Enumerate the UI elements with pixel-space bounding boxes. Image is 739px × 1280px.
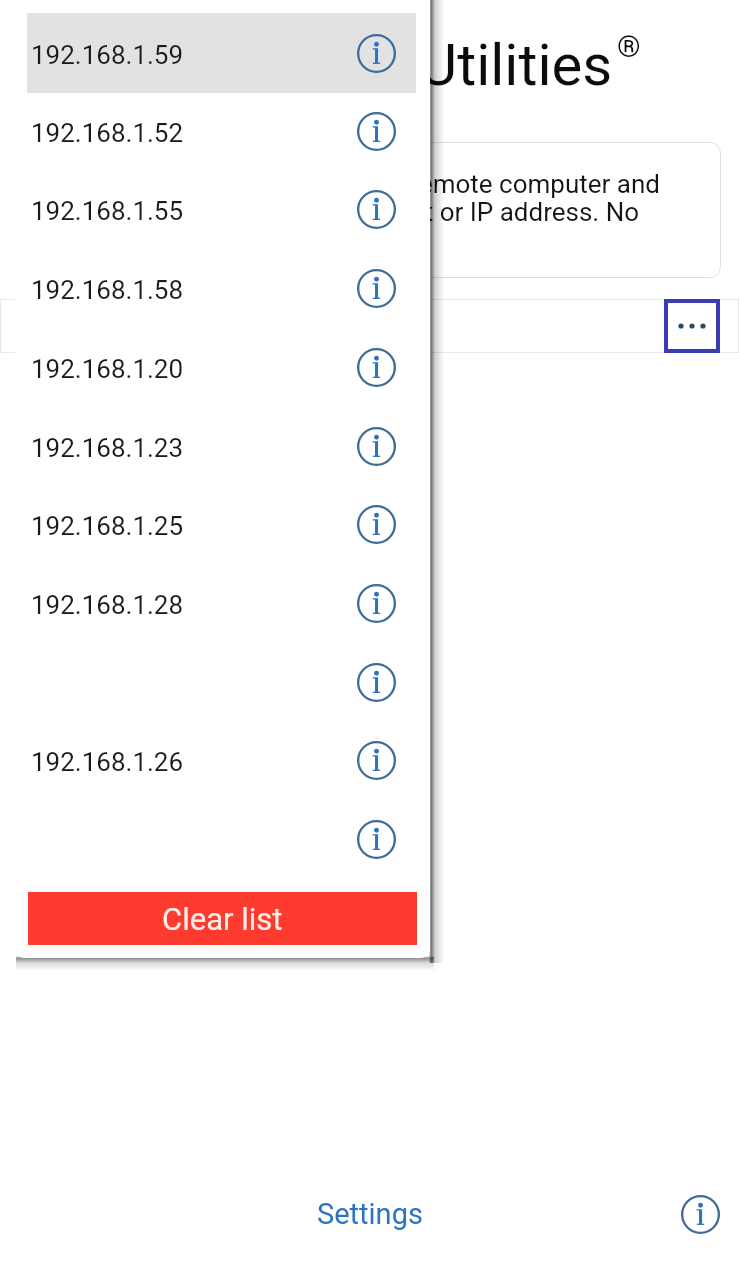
staticText: 192.168.1.25 bbox=[31, 511, 357, 541]
staticText: Enter the Internet ID of the remote comp… bbox=[101, 169, 660, 199]
staticText: Clear list bbox=[162, 901, 283, 937]
staticText: click Connect, or type host or IP addres… bbox=[129, 197, 640, 227]
staticText: 192.168.1.52 bbox=[31, 118, 357, 148]
button[interactable]: 192.168.1.28 bbox=[27, 564, 416, 642]
staticText: ® bbox=[617, 29, 641, 64]
staticText: 192.168.1.20 bbox=[31, 354, 357, 384]
staticText: 192.168.1.26 bbox=[31, 747, 357, 777]
button[interactable]: 192.168.1.20 bbox=[27, 328, 416, 406]
staticText: 192.168.1.55 bbox=[31, 196, 357, 226]
button[interactable]: 192.168.1.59 bbox=[27, 13, 416, 93]
staticText: 192.168.1.28 bbox=[31, 590, 357, 620]
staticText: 192.168.1.23 bbox=[31, 433, 357, 463]
button[interactable] bbox=[27, 800, 416, 878]
button[interactable]: More options bbox=[664, 299, 720, 353]
button[interactable] bbox=[27, 643, 416, 721]
staticText: Remote Utilities bbox=[205, 31, 613, 99]
button[interactable]: 192.168.1.25 bbox=[27, 485, 416, 563]
button[interactable]: 192.168.1.23 bbox=[27, 407, 416, 485]
button[interactable]: Clear list bbox=[28, 892, 417, 945]
staticText: 192.168.1.59 bbox=[31, 40, 357, 70]
button[interactable]: 192.168.1.55 bbox=[27, 170, 416, 248]
button[interactable] bbox=[0, 299, 739, 353]
button[interactable]: 192.168.1.52 bbox=[27, 92, 416, 170]
button[interactable]: About bbox=[681, 1195, 720, 1234]
staticText: Settings bbox=[317, 1197, 423, 1231]
button[interactable]: 192.168.1.58 bbox=[27, 249, 416, 327]
staticText: 192.168.1.58 bbox=[31, 275, 357, 305]
button[interactable]: Settings bbox=[301, 1187, 439, 1241]
button[interactable]: 192.168.1.26 bbox=[27, 721, 416, 799]
